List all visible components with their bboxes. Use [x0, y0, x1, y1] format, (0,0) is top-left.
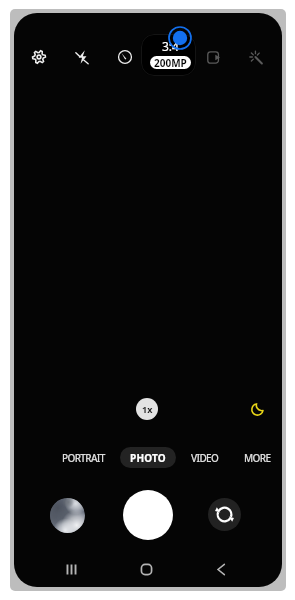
button[interactable]: Timer	[108, 40, 142, 74]
button[interactable]: Gallery	[50, 498, 85, 533]
button[interactable]: Take picture	[123, 490, 173, 540]
staticText: 200MP	[154, 56, 187, 69]
button[interactable]: Motion photo	[196, 40, 230, 74]
button[interactable]: 1x	[136, 398, 158, 420]
staticText: PORTRAIT	[62, 451, 105, 465]
button[interactable]: Night mode	[244, 395, 272, 423]
button[interactable]: Home	[121, 551, 172, 587]
staticText: MORE	[244, 451, 271, 465]
button[interactable]: Aspect ratio 3 to 4, 200 MP	[141, 34, 196, 76]
button[interactable]: Switch camera	[208, 498, 241, 531]
staticText: 1x	[142, 403, 153, 415]
button[interactable]: MORE	[234, 447, 281, 468]
button[interactable]: Settings	[22, 40, 56, 74]
staticText: 3:4	[162, 38, 179, 54]
staticText: VIDEO	[191, 451, 219, 465]
button[interactable]: PORTRAIT	[52, 447, 115, 468]
button[interactable]: VIDEO	[181, 447, 229, 468]
button[interactable]: Recent apps	[46, 551, 97, 587]
button[interactable]: PHOTO	[120, 447, 176, 468]
button[interactable]: Flash off	[65, 40, 99, 74]
staticText: PHOTO	[130, 451, 166, 465]
button[interactable]: Back	[196, 551, 247, 587]
button[interactable]: Filters and effects	[239, 40, 273, 74]
